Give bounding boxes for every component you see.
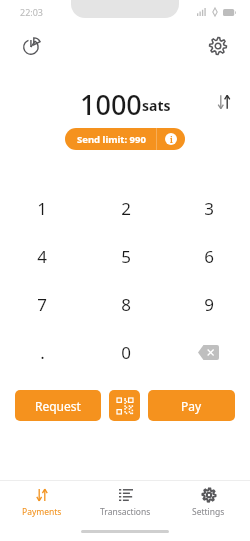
- staticText: 3: [204, 197, 214, 220]
- button[interactable]: Transactions: [84, 481, 167, 525]
- staticText: 22:03: [20, 6, 44, 18]
- button[interactable]: Payments: [0, 481, 84, 525]
- button[interactable]: 4: [0, 232, 84, 280]
- button[interactable]: 3: [167, 184, 250, 232]
- button[interactable]: 0: [84, 328, 167, 376]
- staticText: .: [40, 341, 45, 364]
- staticText: 8: [121, 293, 131, 316]
- button[interactable]: 7: [0, 280, 84, 328]
- button[interactable]: Send limit: 990: [65, 128, 185, 150]
- button[interactable]: Settings: [202, 30, 234, 62]
- button[interactable]: Delete: [167, 328, 250, 376]
- button[interactable]: Settings: [167, 481, 250, 525]
- button[interactable]: Request: [15, 390, 101, 421]
- staticText: 5: [121, 245, 131, 268]
- staticText: 6: [204, 245, 214, 268]
- button[interactable]: 9: [167, 280, 250, 328]
- staticText: Settings: [192, 506, 225, 518]
- button[interactable]: Scan QR code: [109, 390, 140, 421]
- staticText: 7: [37, 293, 47, 316]
- staticText: Send limit: 990: [77, 133, 146, 146]
- button[interactable]: Statistics: [16, 30, 48, 62]
- button[interactable]: 1: [0, 184, 84, 232]
- button[interactable]: Pay: [148, 390, 235, 421]
- staticText: 1000: [80, 86, 142, 118]
- staticText: 4: [37, 245, 47, 268]
- staticText: sats: [142, 96, 171, 115]
- staticText: 9: [204, 293, 214, 316]
- staticText: 1: [37, 197, 47, 220]
- button[interactable]: 2: [84, 184, 167, 232]
- staticText: Pay: [181, 398, 202, 414]
- button[interactable]: 6: [167, 232, 250, 280]
- button[interactable]: Switch currency: [210, 88, 238, 116]
- button[interactable]: 8: [84, 280, 167, 328]
- button[interactable]: 5: [84, 232, 167, 280]
- staticText: 2: [121, 197, 131, 220]
- staticText: Payments: [22, 506, 62, 518]
- staticText: 0: [121, 341, 131, 364]
- staticText: Transactions: [100, 506, 151, 518]
- staticText: i: [170, 134, 173, 145]
- staticText: Request: [35, 398, 81, 414]
- button[interactable]: .: [0, 328, 84, 376]
